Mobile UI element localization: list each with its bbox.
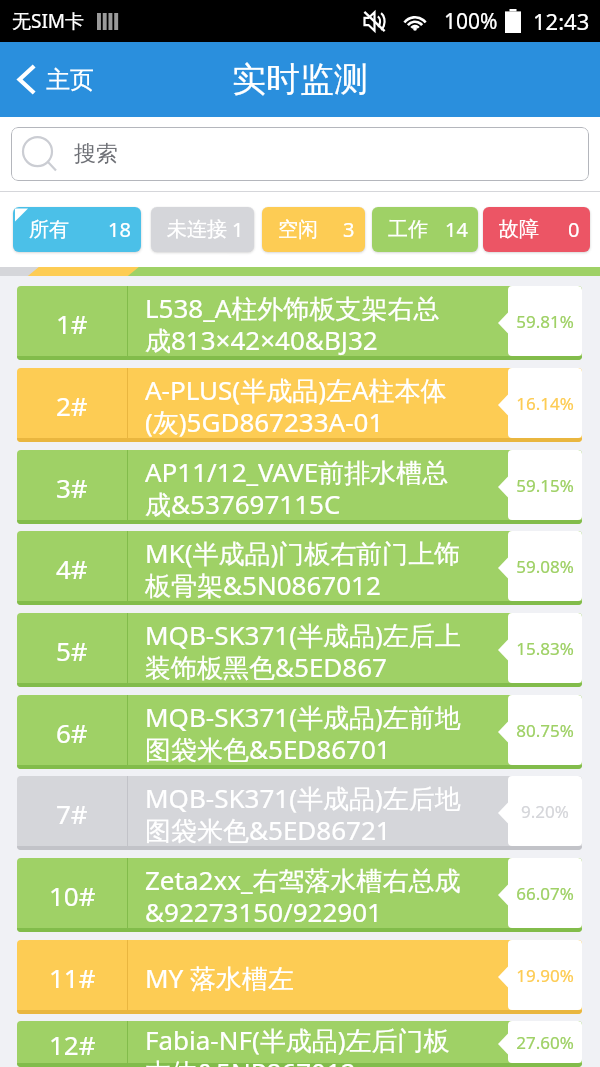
button[interactable]: 所有 <box>13 207 141 252</box>
staticText: 故障 <box>499 217 539 242</box>
button[interactable]: 6# <box>17 695 582 769</box>
staticText: 5# <box>56 633 88 668</box>
staticText: AP11/12_VAVE前排水槽总成&537697115C <box>145 454 461 522</box>
button[interactable]: Back <box>0 54 108 105</box>
staticText: 主页 <box>46 65 94 95</box>
staticText: 14 <box>445 216 468 243</box>
staticText: 3 <box>343 216 355 243</box>
button[interactable]: 5# <box>17 613 582 687</box>
staticText: 27.60% <box>516 1031 574 1054</box>
staticText: 19.90% <box>516 964 574 987</box>
staticText: L538_A柱外饰板支架右总成813×42×40&BJ32 <box>145 290 461 358</box>
staticText: 所有 <box>29 217 69 242</box>
staticText: 66.07% <box>516 882 574 905</box>
staticText: 12:43 <box>533 6 590 36</box>
staticText: 0 <box>568 216 580 243</box>
staticText: 6# <box>56 715 88 750</box>
staticText: 59.81% <box>516 310 574 333</box>
staticText: 无SIM卡 <box>12 8 85 34</box>
staticText: 2# <box>56 388 88 423</box>
staticText: 搜索 <box>74 140 118 168</box>
staticText: 9.20% <box>521 800 569 823</box>
staticText: 11# <box>49 960 96 995</box>
button[interactable]: 工作 <box>372 207 478 252</box>
staticText: MQB-SK371(半成品)左前地图袋米色&5ED86701 <box>145 699 461 767</box>
staticText: 80.75% <box>516 719 574 742</box>
button[interactable]: 3# <box>17 450 582 524</box>
staticText: 未连接 <box>167 217 227 242</box>
staticText: 工作 <box>388 217 428 242</box>
button[interactable]: 10# <box>17 858 582 932</box>
staticText: 59.08% <box>516 555 574 578</box>
staticText: 18 <box>108 216 131 243</box>
button[interactable]: 故障 <box>483 207 590 252</box>
staticText: 7# <box>56 796 88 831</box>
button[interactable]: 7# <box>17 776 582 850</box>
other: Back <box>18 64 35 95</box>
staticText: Zeta2xx_右驾落水槽右总成&92273150/922901 <box>145 862 461 930</box>
staticText: MQB-SK371(半成品)左后上装饰板黑色&5ED867 <box>145 617 461 685</box>
staticText: A-PLUS(半成品)左A柱本体(灰)5GD867233A-01 <box>145 372 461 440</box>
staticText: 空闲 <box>278 217 318 242</box>
staticText: 15.83% <box>516 637 574 660</box>
staticText: 16.14% <box>516 392 574 415</box>
staticText: 12# <box>49 1027 96 1062</box>
button[interactable]: 搜索 <box>11 127 589 181</box>
staticText: 10# <box>49 878 96 913</box>
staticText: 3# <box>56 470 88 505</box>
button[interactable]: 1# <box>17 286 582 360</box>
staticText: 1 <box>232 216 244 243</box>
staticText: Fabia-NF(半成品)左后门板本体&5NP867012 <box>145 1022 461 1067</box>
button[interactable]: 4# <box>17 531 582 605</box>
button[interactable]: 12# <box>17 1021 582 1067</box>
button[interactable]: 空闲 <box>262 207 365 252</box>
staticText: MQB-SK371(半成品)左后地图袋米色&5ED86721 <box>145 780 461 848</box>
button[interactable]: 2# <box>17 368 582 442</box>
staticText: 实时监测 <box>232 58 368 101</box>
staticText: MY 落水槽左 <box>145 960 295 996</box>
staticText: 1# <box>56 306 88 341</box>
staticText: MK(半成品)门板右前门上饰板骨架&5N0867012 <box>145 535 461 603</box>
staticText: 59.15% <box>516 474 574 497</box>
button[interactable]: 11# <box>17 940 582 1014</box>
button[interactable]: 未连接 <box>151 207 254 252</box>
staticText: 4# <box>56 551 88 586</box>
staticText: 100% <box>444 7 498 36</box>
